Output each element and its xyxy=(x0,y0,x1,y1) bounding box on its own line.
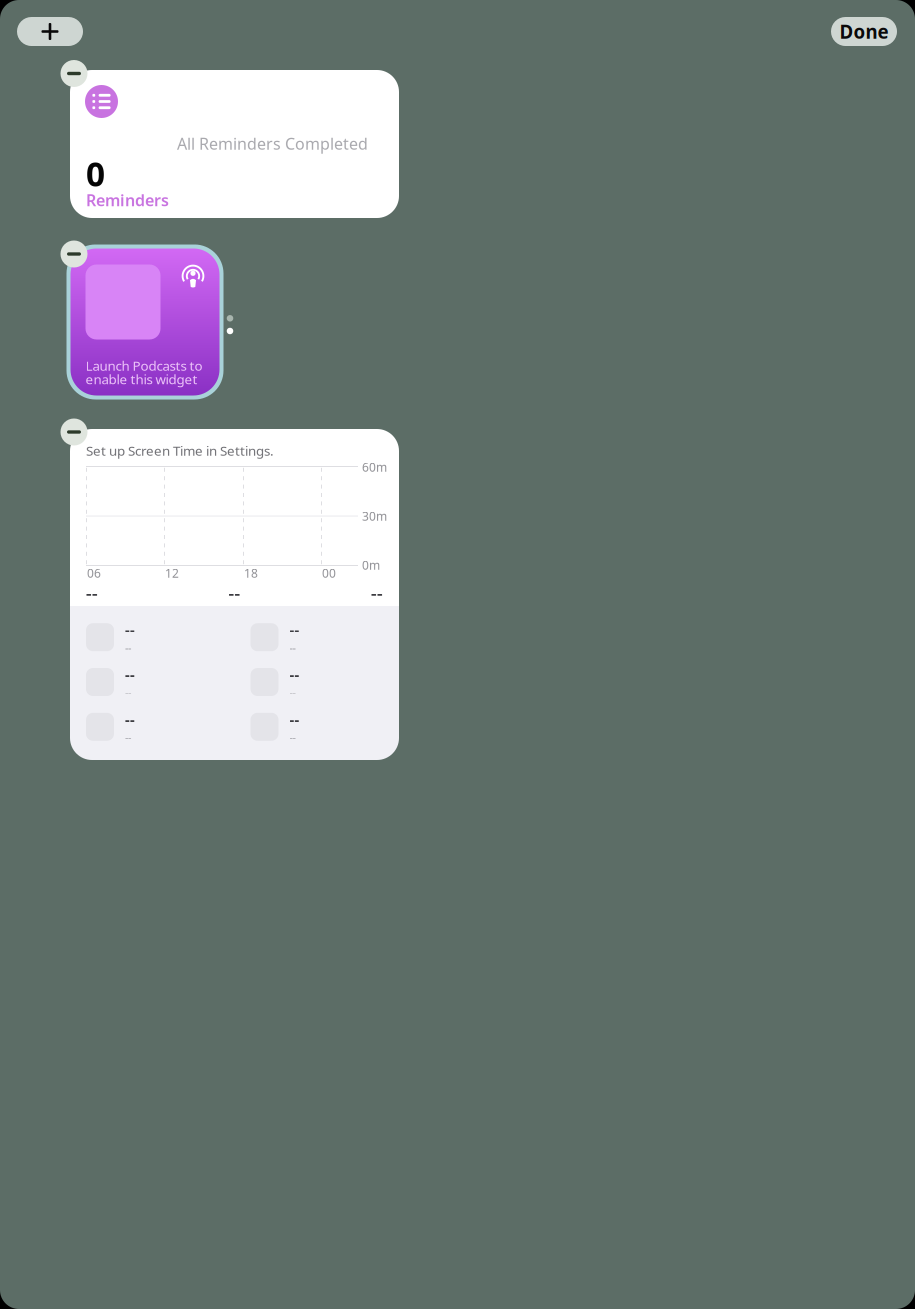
staticText: enable this widget xyxy=(85,370,197,388)
staticText: 00 xyxy=(322,565,336,581)
button[interactable]: Remove widget xyxy=(60,240,87,267)
staticText: -- xyxy=(228,581,240,604)
staticText: -- xyxy=(289,685,295,699)
staticText: 0 xyxy=(86,151,105,196)
staticText: Done xyxy=(839,19,888,44)
staticText: Set up Screen Time in Settings. xyxy=(86,442,274,459)
staticText: -- xyxy=(289,730,295,744)
staticText: 0m xyxy=(362,557,380,573)
staticText: 18 xyxy=(244,565,258,581)
staticText: Launch Podcasts to xyxy=(85,357,202,374)
staticText: Reminders xyxy=(86,189,169,211)
button[interactable]: All Reminders Completed xyxy=(70,70,399,218)
staticText: -- xyxy=(289,620,299,639)
button[interactable]: Set up Screen Time in Settings. xyxy=(70,429,399,760)
staticText: -- xyxy=(125,685,131,699)
staticText: -- xyxy=(125,640,131,655)
staticText: -- xyxy=(289,709,299,729)
button[interactable]: Remove widget xyxy=(60,60,87,87)
staticText: 06 xyxy=(87,565,101,581)
staticText: -- xyxy=(371,581,383,604)
staticText: -- xyxy=(125,620,135,639)
button[interactable]: Remove widget xyxy=(60,418,87,445)
staticText: -- xyxy=(86,581,98,604)
button[interactable]: Launch Podcasts to xyxy=(70,248,219,395)
staticText: 12 xyxy=(165,565,179,581)
staticText: -- xyxy=(125,665,135,684)
staticText: -- xyxy=(125,730,131,744)
staticText: -- xyxy=(289,640,295,655)
staticText: All Reminders Completed xyxy=(177,133,368,154)
staticText: -- xyxy=(289,665,299,684)
button[interactable]: Done xyxy=(831,17,897,46)
button[interactable]: Add widget xyxy=(17,17,83,46)
staticText: 30m xyxy=(362,508,387,524)
staticText: -- xyxy=(125,709,135,729)
staticText: 60m xyxy=(362,459,387,475)
